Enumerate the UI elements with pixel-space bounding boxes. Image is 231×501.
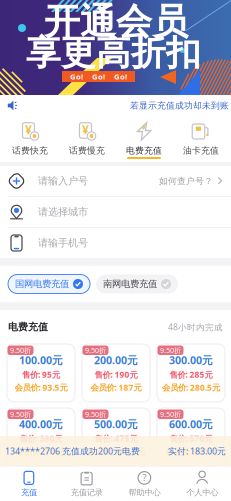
button[interactable]: 请输手机号 (0, 228, 231, 258)
staticText: 会员价: 187元 (90, 382, 141, 393)
staticText: 会员价: 561元 (165, 446, 216, 457)
button[interactable]: 充值记录 (58, 467, 116, 501)
staticText: 电费充值 (8, 321, 48, 333)
staticText: 帮助中心 (128, 487, 160, 498)
button[interactable]: 电费充值 (115, 116, 172, 162)
staticText: 会员价: 280.5元 (162, 382, 220, 393)
staticText: ¥ (25, 121, 32, 138)
button[interactable]: ¥ (1, 116, 58, 162)
staticText: 9.50折 (85, 345, 106, 355)
staticText: 电费充值 (126, 145, 162, 156)
staticText: 请输手机号 (38, 237, 88, 249)
button[interactable]: 请输入户号 (0, 166, 231, 196)
staticText: Go! (70, 71, 83, 82)
staticText: 600.00元 (169, 417, 213, 431)
staticText: 充值记录 (71, 487, 103, 498)
staticText: 500.00元 (94, 417, 138, 431)
staticText: 9.50折 (10, 409, 31, 419)
staticText: 请输入户号 (38, 175, 88, 187)
button[interactable]: 400.00元 (7, 408, 75, 466)
button[interactable]: ? (115, 467, 173, 501)
button[interactable]: ¥ (58, 116, 115, 162)
staticText: 开通会员 (44, 0, 188, 44)
staticText: Go! (114, 71, 127, 82)
staticText: 售价: 95元 (22, 369, 60, 380)
staticText: 如何查户号？ (159, 175, 213, 187)
staticText: 会员价: 374元 (15, 446, 66, 457)
staticText: 100.00元 (19, 353, 63, 367)
staticText: 9.50折 (160, 409, 181, 419)
button[interactable]: 200.00元 (82, 344, 150, 402)
staticText: 会员价: 467.5元 (87, 446, 145, 457)
staticText: 300.00元 (169, 353, 213, 367)
staticText: 200.00元 (94, 353, 138, 367)
staticText: 134****2706 充值成功200元电费 (5, 445, 140, 457)
button[interactable]: 国网电费充值 (8, 274, 90, 293)
staticText: Go! (92, 71, 105, 82)
staticText: 售价: 475元 (94, 433, 137, 444)
staticText: 9.50折 (160, 345, 181, 355)
button[interactable]: 请选择城市 (0, 197, 231, 227)
staticText: 会员价: 93.5元 (14, 382, 67, 393)
button[interactable]: 300.00元 (157, 344, 225, 402)
staticText: 售价: 380元 (19, 433, 62, 444)
staticText: 实付: 183.00元 (168, 445, 226, 457)
staticText: ¥ (82, 121, 89, 138)
staticText: 享更高折扣 (26, 31, 201, 75)
button[interactable]: 充值 (0, 467, 58, 501)
staticText: 请选择城市 (38, 206, 88, 218)
staticText: 话费慢充 (69, 145, 105, 156)
staticText: 南网电费充值 (103, 278, 157, 290)
staticText: 话费快充 (12, 145, 48, 156)
staticText: 售价: 190元 (94, 369, 137, 380)
staticText: 若显示充值成功却未到账 (130, 100, 229, 111)
staticText: 充值 (21, 487, 37, 498)
staticText: 9.50折 (10, 345, 31, 355)
button[interactable]: 个人中心 (173, 467, 231, 501)
staticText: 售价: 285元 (169, 369, 212, 380)
button[interactable]: 100.00元 (7, 344, 75, 402)
staticText: 国网电费充值 (15, 278, 69, 290)
staticText: 油卡充值 (183, 145, 219, 156)
staticText: 个人中心 (186, 487, 218, 498)
staticText: 售价: 570元 (169, 433, 212, 444)
staticText: 48小时内完成 (168, 321, 223, 333)
staticText: 400.00元 (19, 417, 63, 431)
button[interactable]: 600.00元 (157, 408, 225, 466)
button[interactable]: 南网电费充值 (96, 274, 178, 293)
button[interactable]: 油卡充值 (172, 116, 229, 162)
staticText: 9.50折 (85, 409, 106, 419)
button[interactable]: 500.00元 (82, 408, 150, 466)
staticText: ? (142, 471, 146, 484)
